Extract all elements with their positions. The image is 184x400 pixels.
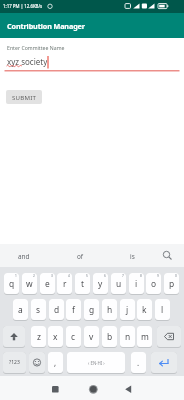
staticText: z: [37, 331, 41, 342]
staticText: SUBMIT: [12, 93, 37, 101]
staticText: is: [130, 252, 135, 261]
staticText: t: [81, 278, 85, 289]
staticText: 8: [140, 274, 142, 278]
button[interactable]: j: [120, 299, 135, 320]
staticText: d: [54, 304, 60, 315]
staticText: k: [142, 304, 147, 315]
staticText: m: [141, 331, 149, 342]
staticText: n: [125, 331, 131, 342]
staticText: y: [98, 278, 103, 289]
button[interactable]: i: [129, 273, 144, 294]
button[interactable]: ?123: [3, 352, 26, 373]
button[interactable]: [29, 352, 45, 373]
staticText: b: [107, 331, 113, 342]
button[interactable]: a: [13, 299, 28, 320]
staticText: p: [169, 278, 175, 289]
staticText: i: [135, 278, 138, 289]
staticText: w: [26, 278, 33, 289]
staticText: Contribution Manager: [7, 21, 85, 31]
staticText: h: [107, 304, 113, 315]
button[interactable]: u: [111, 273, 126, 294]
button[interactable]: q: [4, 273, 19, 294]
button[interactable]: [3, 326, 25, 347]
staticText: j: [126, 304, 129, 315]
button[interactable]: h: [102, 299, 117, 320]
staticText: 1: [15, 274, 17, 278]
staticText: g: [89, 304, 95, 315]
button[interactable]: g: [84, 299, 99, 320]
staticText: Enter Committee Name: [7, 44, 65, 51]
button[interactable]: k: [137, 299, 152, 320]
staticText: 1:17 PM | 12.6KB/s: [3, 3, 43, 9]
button[interactable]: z: [31, 326, 46, 347]
button[interactable]: [86, 382, 100, 396]
button[interactable]: .: [131, 352, 146, 373]
staticText: c: [71, 331, 76, 342]
staticText: a: [18, 304, 23, 315]
staticText: ‹ EN·HI ›: [88, 360, 105, 366]
button[interactable]: v: [84, 326, 99, 347]
button[interactable]: f: [66, 299, 81, 320]
button[interactable]: x: [48, 326, 63, 347]
button[interactable]: l: [155, 299, 170, 320]
button[interactable]: ,: [48, 352, 63, 373]
button[interactable]: r: [57, 273, 72, 294]
staticText: x: [53, 331, 58, 342]
button[interactable]: ‹ EN·HI ›: [67, 352, 125, 373]
button[interactable]: d: [49, 299, 64, 320]
staticText: 0: [175, 274, 177, 278]
button[interactable]: [151, 352, 177, 373]
button[interactable]: o: [146, 273, 161, 294]
button[interactable]: t: [75, 273, 90, 294]
staticText: u: [116, 278, 122, 289]
staticText: 4: [68, 274, 70, 278]
button[interactable]: SUBMIT: [6, 90, 42, 104]
staticText: f: [72, 304, 75, 315]
button[interactable]: n: [120, 326, 135, 347]
staticText: 5: [86, 274, 88, 278]
staticText: v: [89, 331, 94, 342]
button[interactable]: y: [93, 273, 108, 294]
button[interactable]: [121, 382, 135, 396]
staticText: 6: [104, 274, 106, 278]
button[interactable]: [0, 244, 184, 267]
staticText: 3: [51, 274, 53, 278]
button[interactable]: e: [40, 273, 55, 294]
button[interactable]: [157, 326, 181, 347]
staticText: 9: [157, 274, 159, 278]
staticText: and: [18, 252, 30, 261]
button[interactable]: b: [102, 326, 117, 347]
staticText: 2: [33, 274, 35, 278]
staticText: of: [77, 252, 84, 261]
staticText: s: [36, 304, 41, 315]
staticText: q: [9, 278, 15, 289]
staticText: l: [161, 304, 164, 315]
staticText: r: [63, 278, 67, 289]
staticText: ,: [54, 357, 57, 368]
button[interactable]: p: [164, 273, 179, 294]
staticText: e: [45, 278, 50, 289]
button[interactable]: c: [66, 326, 81, 347]
button[interactable]: m: [137, 326, 152, 347]
staticText: ?123: [9, 359, 20, 366]
button[interactable]: Contribution Manager: [0, 13, 184, 38]
staticText: xyz society: [7, 56, 48, 67]
staticText: o: [151, 278, 157, 289]
button[interactable]: s: [31, 299, 46, 320]
staticText: 7: [122, 274, 124, 278]
button[interactable]: w: [22, 273, 37, 294]
button[interactable]: [48, 382, 62, 396]
staticText: .: [137, 357, 140, 368]
